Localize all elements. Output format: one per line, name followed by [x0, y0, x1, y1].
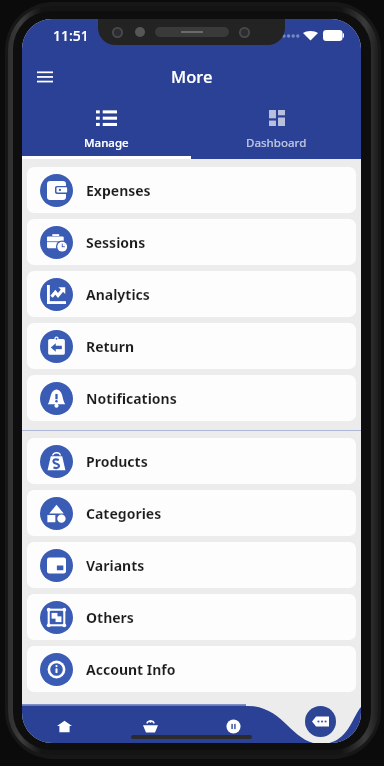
- button[interactable]: Home: [43, 697, 85, 743]
- button[interactable]: Products: [27, 438, 356, 484]
- button[interactable]: Open navigation menu: [28, 59, 62, 93]
- staticText: Account Info: [86, 660, 176, 679]
- button[interactable]: Return: [27, 323, 356, 369]
- button[interactable]: Playlist: [212, 697, 254, 743]
- button[interactable]: Manage: [22, 99, 191, 159]
- button[interactable]: Expenses: [27, 167, 356, 213]
- staticText: Notifications: [86, 389, 177, 408]
- staticText: Return: [86, 337, 135, 356]
- staticText: More: [171, 65, 213, 87]
- staticText: Analytics: [86, 285, 150, 304]
- staticText: Manage: [84, 135, 129, 151]
- staticText: Products: [86, 452, 148, 471]
- staticText: Categories: [86, 504, 162, 523]
- button[interactable]: Categories: [27, 490, 356, 536]
- staticText: Dashboard: [246, 135, 307, 151]
- staticText: Variants: [86, 556, 145, 575]
- button[interactable]: Chat: [305, 706, 336, 737]
- button[interactable]: Sessions: [27, 219, 356, 265]
- staticText: 11:51: [53, 26, 89, 45]
- button[interactable]: Notifications: [27, 375, 356, 421]
- button[interactable]: Account Info: [27, 646, 356, 692]
- staticText: Others: [86, 608, 134, 627]
- button[interactable]: Variants: [27, 542, 356, 588]
- button[interactable]: Analytics: [27, 271, 356, 317]
- button[interactable]: Orders: [129, 697, 171, 743]
- staticText: Expenses: [86, 181, 151, 200]
- staticText: Sessions: [86, 233, 146, 252]
- button[interactable]: Others: [27, 594, 356, 640]
- button[interactable]: Dashboard: [191, 99, 361, 159]
